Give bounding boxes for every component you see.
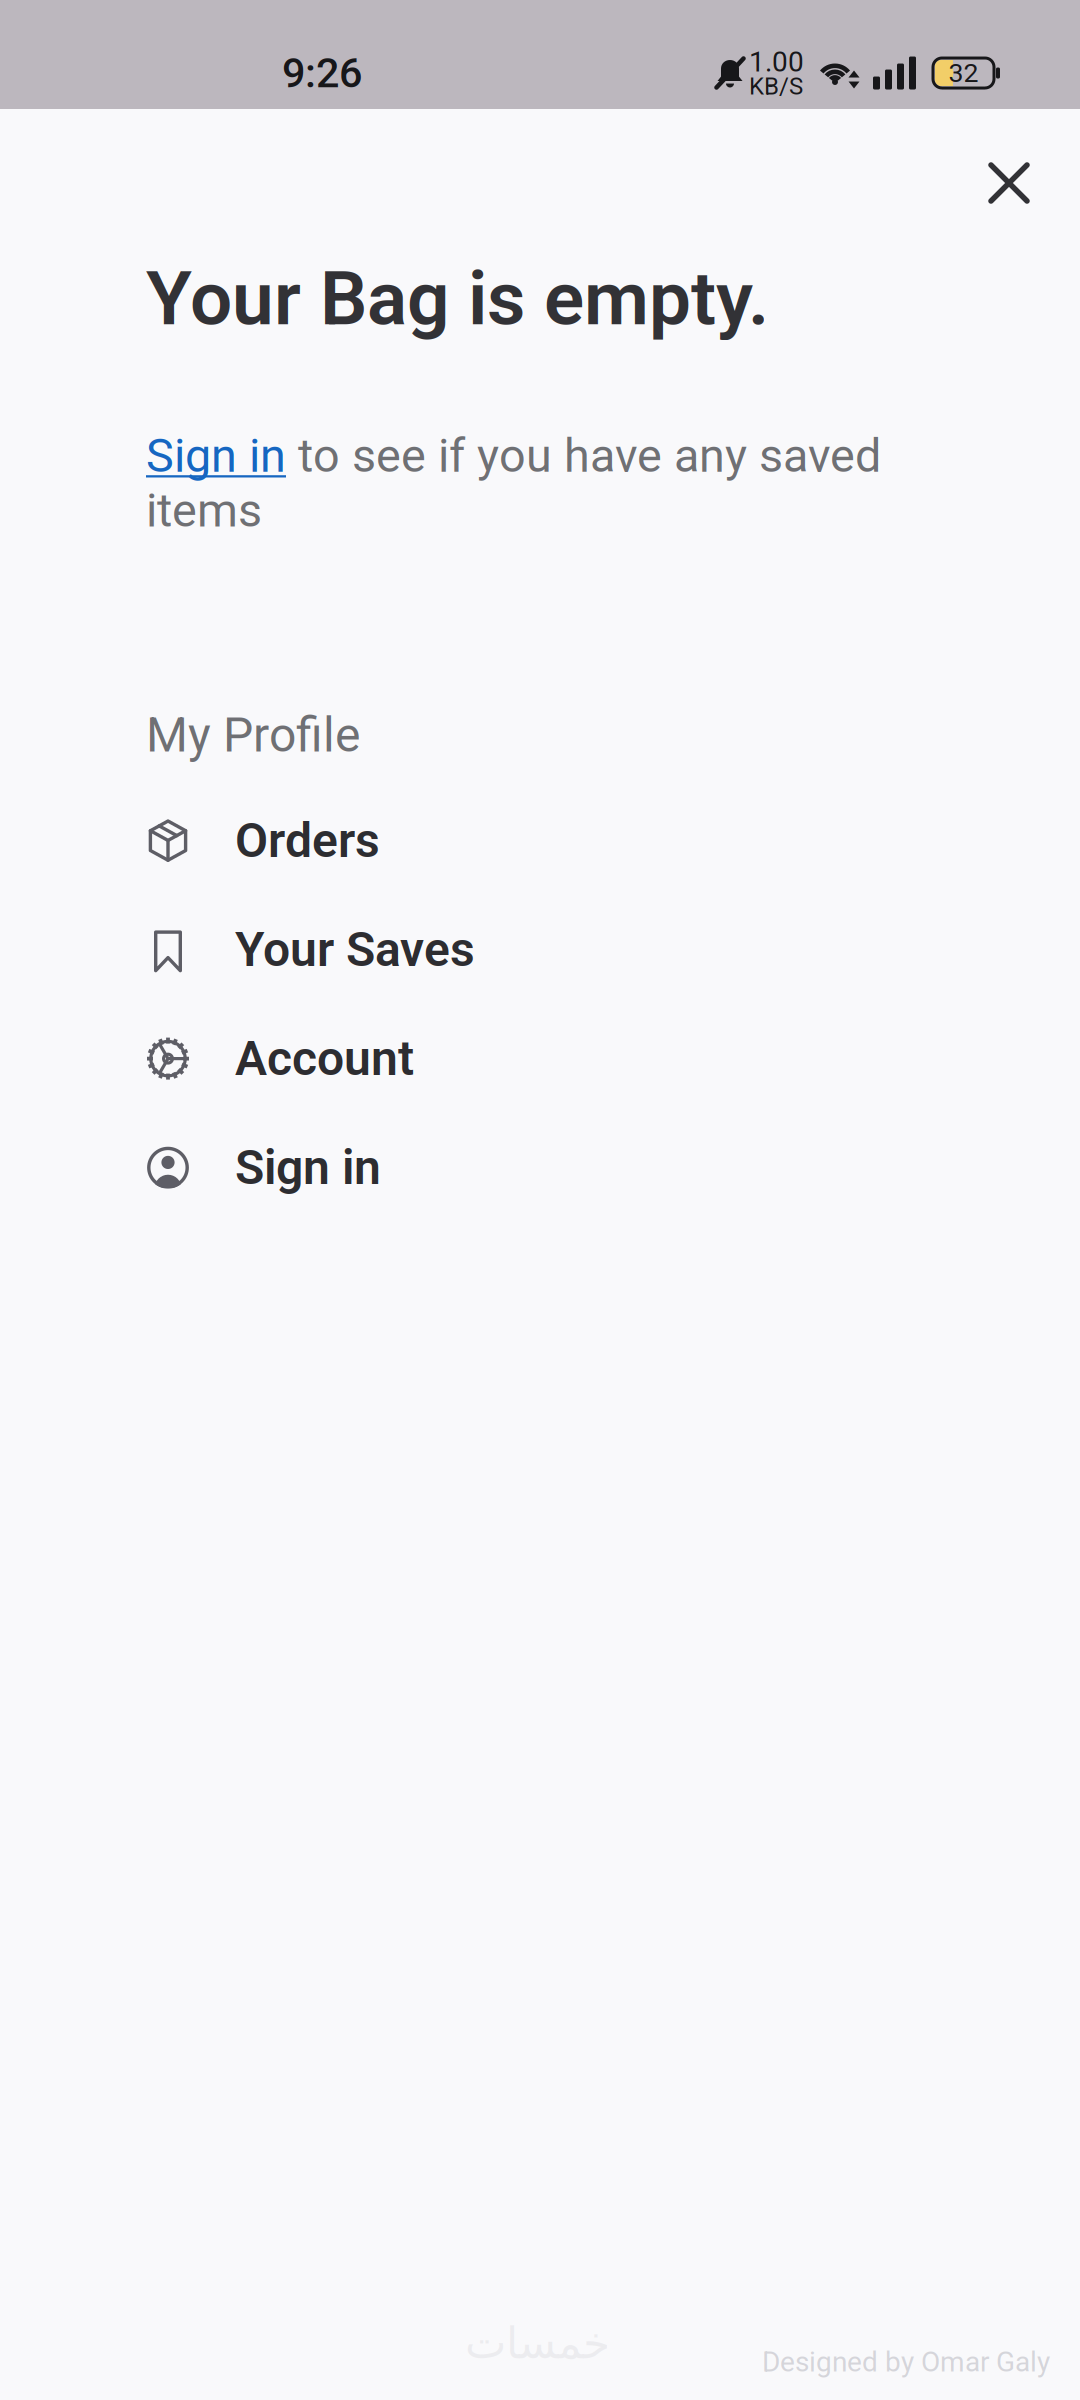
staticText: 9:26 — [282, 49, 362, 97]
staticText: Account — [235, 1030, 414, 1087]
staticText: خمسات — [464, 2317, 609, 2369]
staticText: My Profile — [146, 707, 360, 763]
staticText: Sign in — [235, 1139, 381, 1196]
staticText: Orders — [235, 812, 380, 869]
staticText: Designed by Omar Galy — [762, 2346, 1050, 2378]
staticText: Your Bag is empty. — [146, 255, 769, 342]
staticText: 1.00 — [749, 45, 804, 78]
button[interactable]: Orders — [143, 786, 1080, 895]
staticText: Your Saves — [235, 921, 475, 978]
button[interactable]: Your Saves — [143, 895, 1080, 1004]
staticText: KB/S — [749, 72, 803, 100]
staticText: Sign in to see if you have any saved ite… — [146, 428, 881, 538]
button[interactable]: Close — [962, 136, 1056, 230]
button[interactable]: Account — [143, 1004, 1080, 1113]
staticText: 32 — [948, 57, 978, 89]
button[interactable]: Sign in — [143, 1113, 1080, 1222]
